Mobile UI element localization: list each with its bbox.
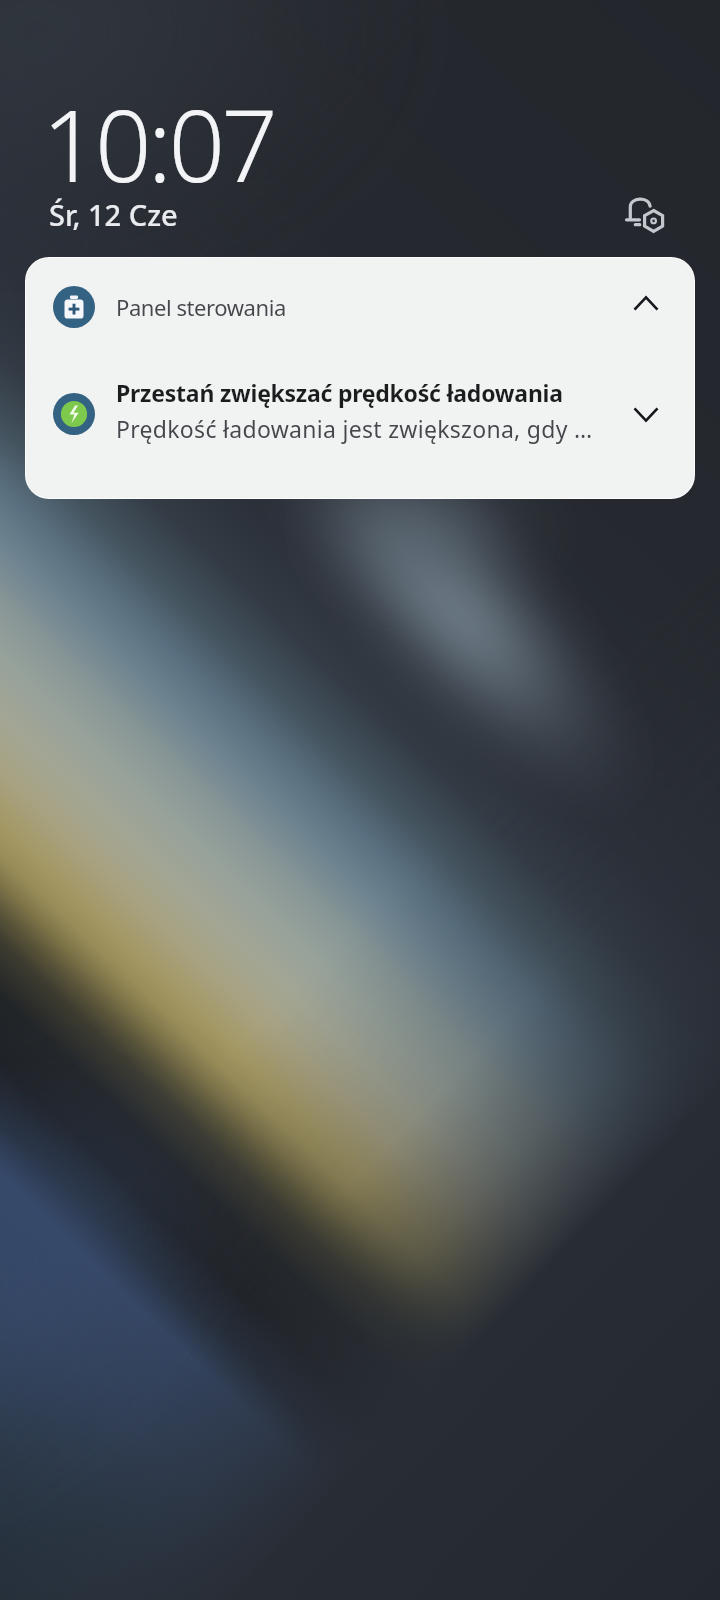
button[interactable]: Panel sterowania: [26, 258, 694, 356]
staticText: Przestań zwiększać prędkość ładowania: [116, 377, 563, 408]
button[interactable]: Expand: [626, 395, 666, 435]
button[interactable]: Notification settings: [622, 192, 666, 236]
button[interactable]: Collapse: [626, 283, 666, 323]
staticText: Prędkość ładowania jest zwiększona, gdy …: [116, 413, 593, 444]
staticText: Panel sterowania: [116, 292, 286, 322]
button[interactable]: Przestań zwiększać prędkość ładowania: [26, 356, 694, 471]
staticText: 10:07: [42, 76, 275, 192]
staticText: Śr, 12 Cze: [49, 195, 178, 234]
